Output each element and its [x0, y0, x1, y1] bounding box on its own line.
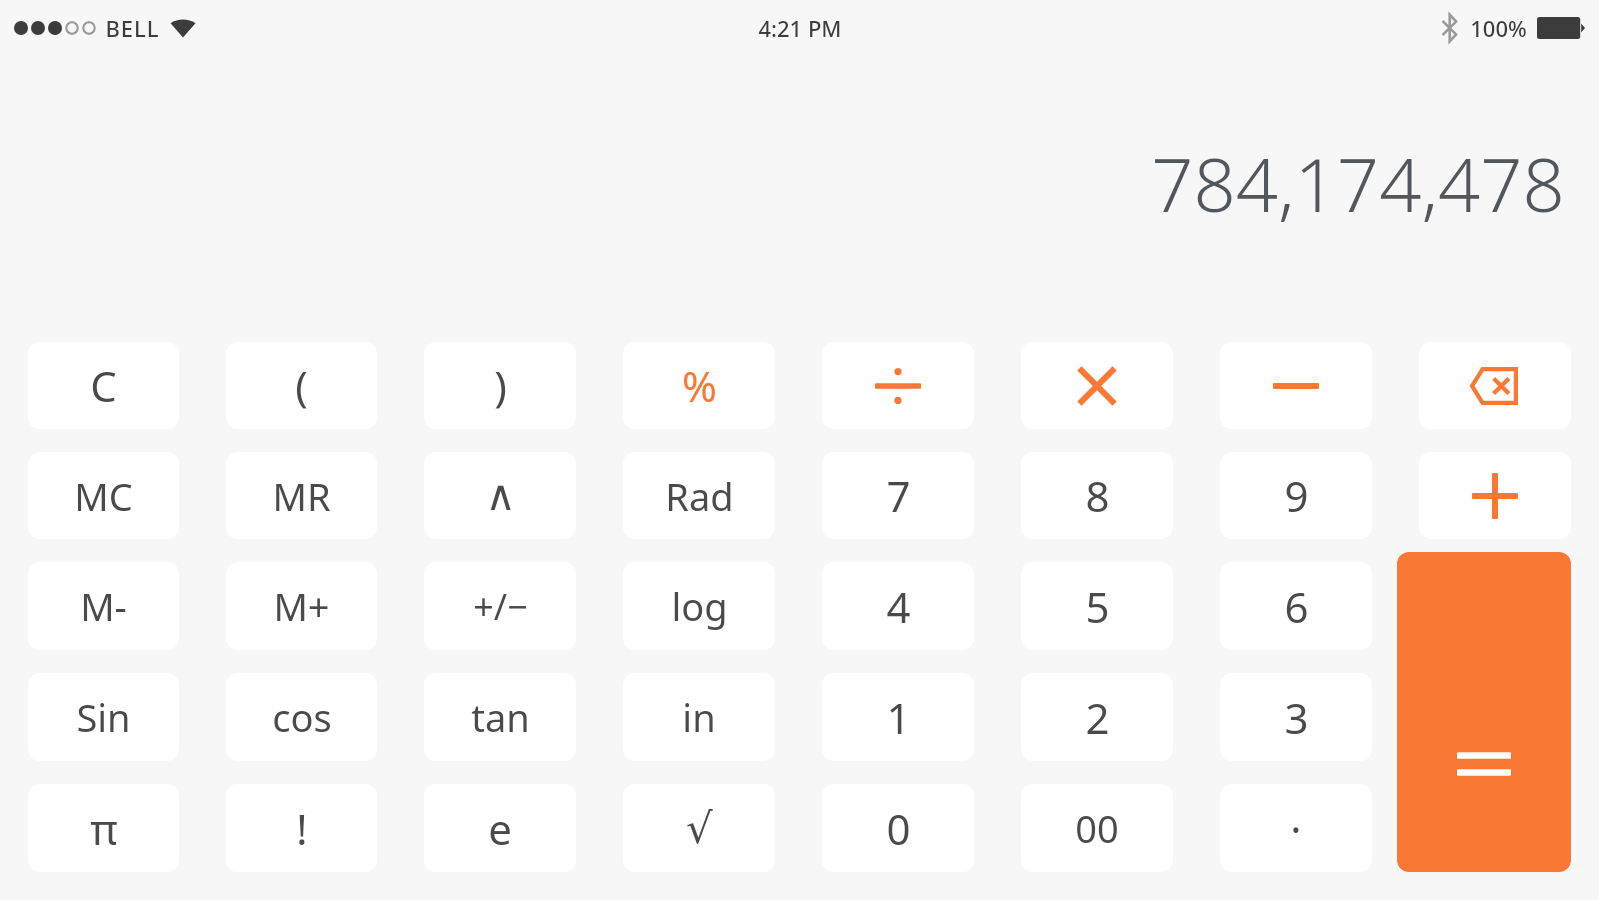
staticText: C	[90, 357, 117, 414]
button[interactable]: tan	[424, 673, 576, 761]
staticText: ·	[1290, 800, 1302, 857]
staticText: in	[682, 691, 716, 743]
button[interactable]: Equals	[1397, 552, 1571, 872]
button[interactable]: ∧	[424, 452, 576, 539]
button[interactable]: 00	[1021, 784, 1173, 872]
button[interactable]: 2	[1021, 673, 1173, 761]
staticText: 2	[1085, 689, 1110, 746]
button[interactable]: cos	[226, 673, 377, 761]
button[interactable]: in	[623, 673, 775, 761]
button[interactable]: %	[623, 342, 775, 429]
button[interactable]: 0	[822, 784, 974, 872]
staticText: 00	[1075, 802, 1119, 854]
button[interactable]: Sin	[28, 673, 179, 761]
staticText: M-	[80, 580, 127, 632]
staticText: 8	[1085, 467, 1110, 524]
button[interactable]: e	[424, 784, 576, 872]
staticText: M+	[273, 580, 330, 632]
button[interactable]: !	[226, 784, 377, 872]
staticText: !	[296, 800, 308, 857]
staticText: MC	[74, 470, 133, 522]
button[interactable]: 3	[1220, 673, 1372, 761]
staticText: 1	[886, 689, 911, 746]
button[interactable]: M-	[28, 562, 179, 650]
button[interactable]: Multiply	[1021, 342, 1173, 429]
button[interactable]: 5	[1021, 562, 1173, 650]
staticText: )	[494, 357, 507, 414]
button[interactable]: (	[226, 342, 377, 429]
staticText: MR	[272, 470, 331, 522]
button[interactable]: ·	[1220, 784, 1372, 872]
staticText: ∧	[485, 471, 516, 520]
button[interactable]: 4	[822, 562, 974, 650]
other: Equals	[1457, 749, 1511, 779]
staticText: log	[671, 580, 728, 632]
button[interactable]: 1	[822, 673, 974, 761]
button[interactable]: Plus	[1419, 452, 1571, 539]
staticText: √	[686, 804, 713, 853]
staticText: +/−	[473, 582, 528, 631]
button[interactable]: √	[623, 784, 775, 872]
staticText: cos	[272, 691, 332, 743]
button[interactable]: 8	[1021, 452, 1173, 539]
staticText: Sin	[76, 691, 131, 743]
staticText: BELL	[105, 13, 160, 43]
button[interactable]: MC	[28, 452, 179, 539]
button[interactable]: MR	[226, 452, 377, 539]
staticText: 4:21 PM	[758, 13, 842, 43]
button[interactable]: 9	[1220, 452, 1372, 539]
staticText: π	[90, 800, 118, 857]
staticText: %	[682, 357, 717, 414]
staticText: 4	[886, 578, 911, 635]
staticText: 5	[1085, 578, 1110, 635]
staticText: 7	[886, 467, 911, 524]
button[interactable]: )	[424, 342, 576, 429]
staticText: 0	[886, 800, 911, 857]
button[interactable]: Divide	[822, 342, 974, 429]
button[interactable]: 7	[822, 452, 974, 539]
staticText: 3	[1284, 689, 1309, 746]
button[interactable]: Backspace	[1419, 342, 1571, 429]
staticText: 784,174,478	[1151, 133, 1565, 234]
staticText: 100%	[1470, 13, 1527, 43]
button[interactable]: π	[28, 784, 179, 872]
staticText: e	[488, 800, 512, 857]
staticText: (	[295, 357, 308, 414]
button[interactable]: Minus	[1220, 342, 1372, 429]
button[interactable]: M+	[226, 562, 377, 650]
button[interactable]: +/−	[424, 562, 576, 650]
button[interactable]: log	[623, 562, 775, 650]
button[interactable]: Rad	[623, 452, 775, 539]
button[interactable]: 6	[1220, 562, 1372, 650]
staticText: tan	[471, 691, 530, 743]
staticText: 9	[1284, 467, 1309, 524]
button[interactable]: C	[28, 342, 179, 429]
staticText: Rad	[665, 470, 734, 522]
staticText: 6	[1284, 578, 1309, 635]
